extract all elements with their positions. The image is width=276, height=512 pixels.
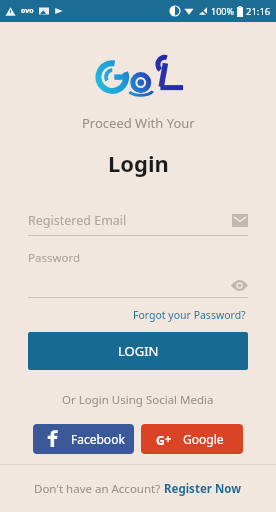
- button[interactable]: Registered Email: [28, 208, 248, 236]
- staticText: 100%: [211, 5, 234, 17]
- button[interactable]: Password: [28, 250, 248, 298]
- staticText: Login: [108, 148, 169, 178]
- staticText: Forgot your Password?: [133, 308, 246, 322]
- button[interactable]: Don't have an Account?: [30, 477, 246, 501]
- button[interactable]: Facebook: [33, 424, 134, 454]
- other: Email: [232, 214, 248, 227]
- staticText: LOGIN: [118, 342, 159, 360]
- staticText: Don't have an Account?: [34, 481, 164, 497]
- button[interactable]: Show password: [230, 276, 248, 294]
- button[interactable]: LOGIN: [28, 332, 248, 370]
- button[interactable]: Forgot your Password?: [131, 306, 248, 324]
- staticText: Or Login Using Social Media: [62, 392, 214, 408]
- staticText: Register Now: [164, 481, 242, 497]
- staticText: Proceed With Your: [82, 114, 195, 132]
- staticText: ovo: [21, 6, 34, 16]
- staticText: 21:16: [246, 5, 271, 18]
- staticText: Password: [28, 250, 81, 266]
- button[interactable]: G: [141, 424, 243, 454]
- staticText: Google: [183, 431, 224, 447]
- staticText: Facebook: [71, 431, 125, 447]
- staticText: G: [156, 432, 165, 446]
- staticText: Registered Email: [28, 212, 232, 229]
